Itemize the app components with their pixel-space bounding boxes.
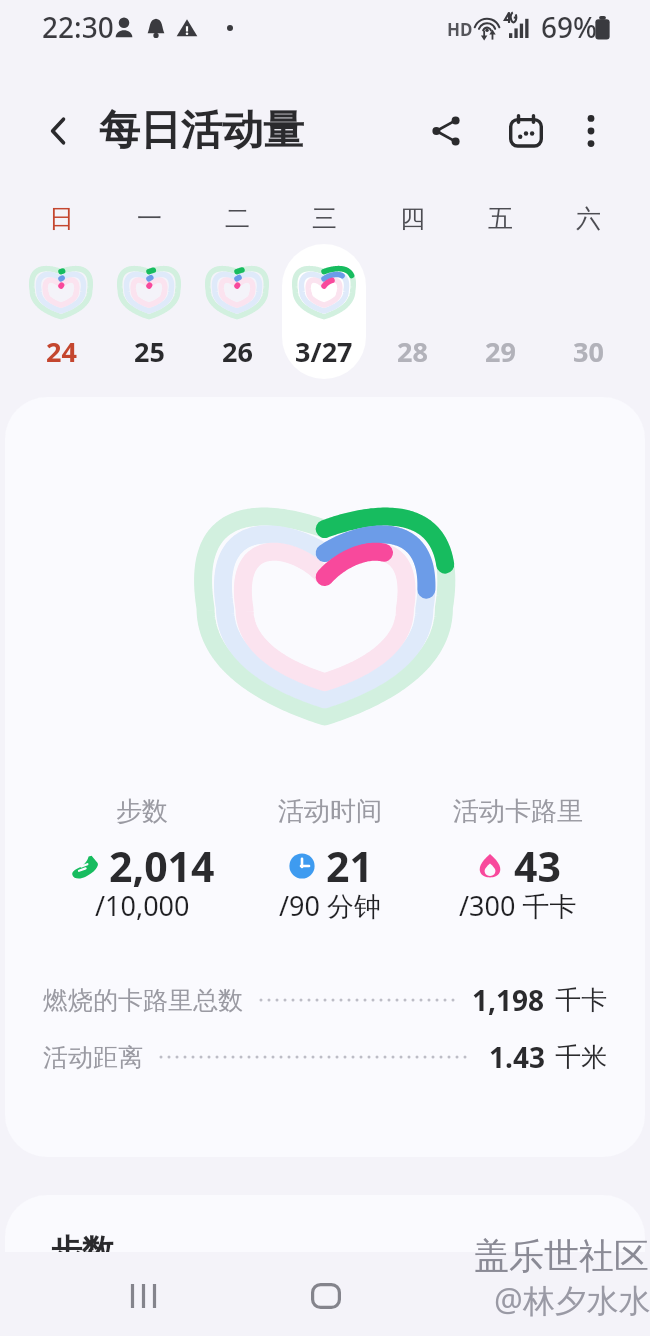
staticText: 28	[397, 333, 428, 370]
staticText: 30	[573, 333, 604, 370]
staticText: @林夕水水	[494, 1278, 650, 1322]
staticText: 步数	[116, 795, 168, 828]
staticText: 1,198	[472, 981, 545, 1019]
button[interactable]: 三	[280, 186, 368, 376]
button[interactable]: Share	[412, 97, 480, 165]
button[interactable]: 一	[105, 186, 193, 376]
staticText: 2,014	[109, 838, 215, 894]
staticText: 活动时间	[278, 795, 382, 828]
staticText: 活动卡路里	[453, 795, 583, 828]
button[interactable]: 二	[193, 186, 281, 376]
staticText: 千卡	[555, 984, 607, 1017]
button[interactable]: 五	[456, 186, 544, 376]
staticText: 五	[488, 203, 513, 234]
staticText: 29	[485, 333, 516, 370]
button[interactable]: 四	[368, 186, 456, 376]
button[interactable]: Back	[452, 1268, 560, 1324]
button[interactable]: 日	[17, 186, 105, 376]
staticText: 25	[134, 333, 165, 370]
button[interactable]: Calendar	[492, 97, 560, 165]
button[interactable]: 活动距离	[43, 1037, 607, 1077]
staticText: 1.43	[489, 1038, 545, 1076]
button[interactable]: 步数	[48, 795, 236, 920]
staticText: 26	[222, 333, 253, 370]
staticText: /90 分钟	[279, 887, 381, 924]
button[interactable]: 六	[544, 186, 632, 376]
button[interactable]: 活动时间	[236, 795, 424, 920]
button[interactable]: 燃烧的卡路里总数	[43, 980, 607, 1020]
staticText: 千米	[555, 1041, 607, 1074]
staticText: 三	[312, 203, 337, 234]
staticText: 24	[46, 333, 77, 370]
button[interactable]: Back	[28, 100, 90, 162]
staticText: /300 千卡	[459, 887, 577, 924]
staticText: 69%	[541, 8, 597, 46]
staticText: /10,000	[95, 887, 190, 924]
staticText: 四	[400, 203, 425, 234]
staticText: 3/27	[295, 333, 353, 370]
staticText: 燃烧的卡路里总数	[43, 985, 243, 1016]
staticText: 21	[326, 838, 373, 894]
button[interactable]: 活动卡路里	[424, 795, 612, 920]
button[interactable]: Home	[272, 1268, 380, 1324]
staticText: 22:30	[42, 8, 114, 46]
button[interactable]: 步数	[5, 1195, 645, 1252]
button[interactable]: More options	[562, 102, 620, 160]
staticText: HD	[447, 18, 473, 41]
staticText: 日	[49, 203, 74, 234]
staticText: 一	[137, 203, 162, 234]
staticText: 二	[225, 203, 250, 234]
staticText: 盖乐世社区	[474, 1234, 649, 1278]
button[interactable]: Recent apps	[90, 1268, 198, 1324]
staticText: 43	[514, 838, 561, 894]
staticText: 每日活动量	[99, 105, 304, 157]
staticText: 活动距离	[43, 1042, 143, 1073]
staticText: 步数	[50, 1231, 114, 1252]
staticText: 六	[576, 203, 601, 234]
